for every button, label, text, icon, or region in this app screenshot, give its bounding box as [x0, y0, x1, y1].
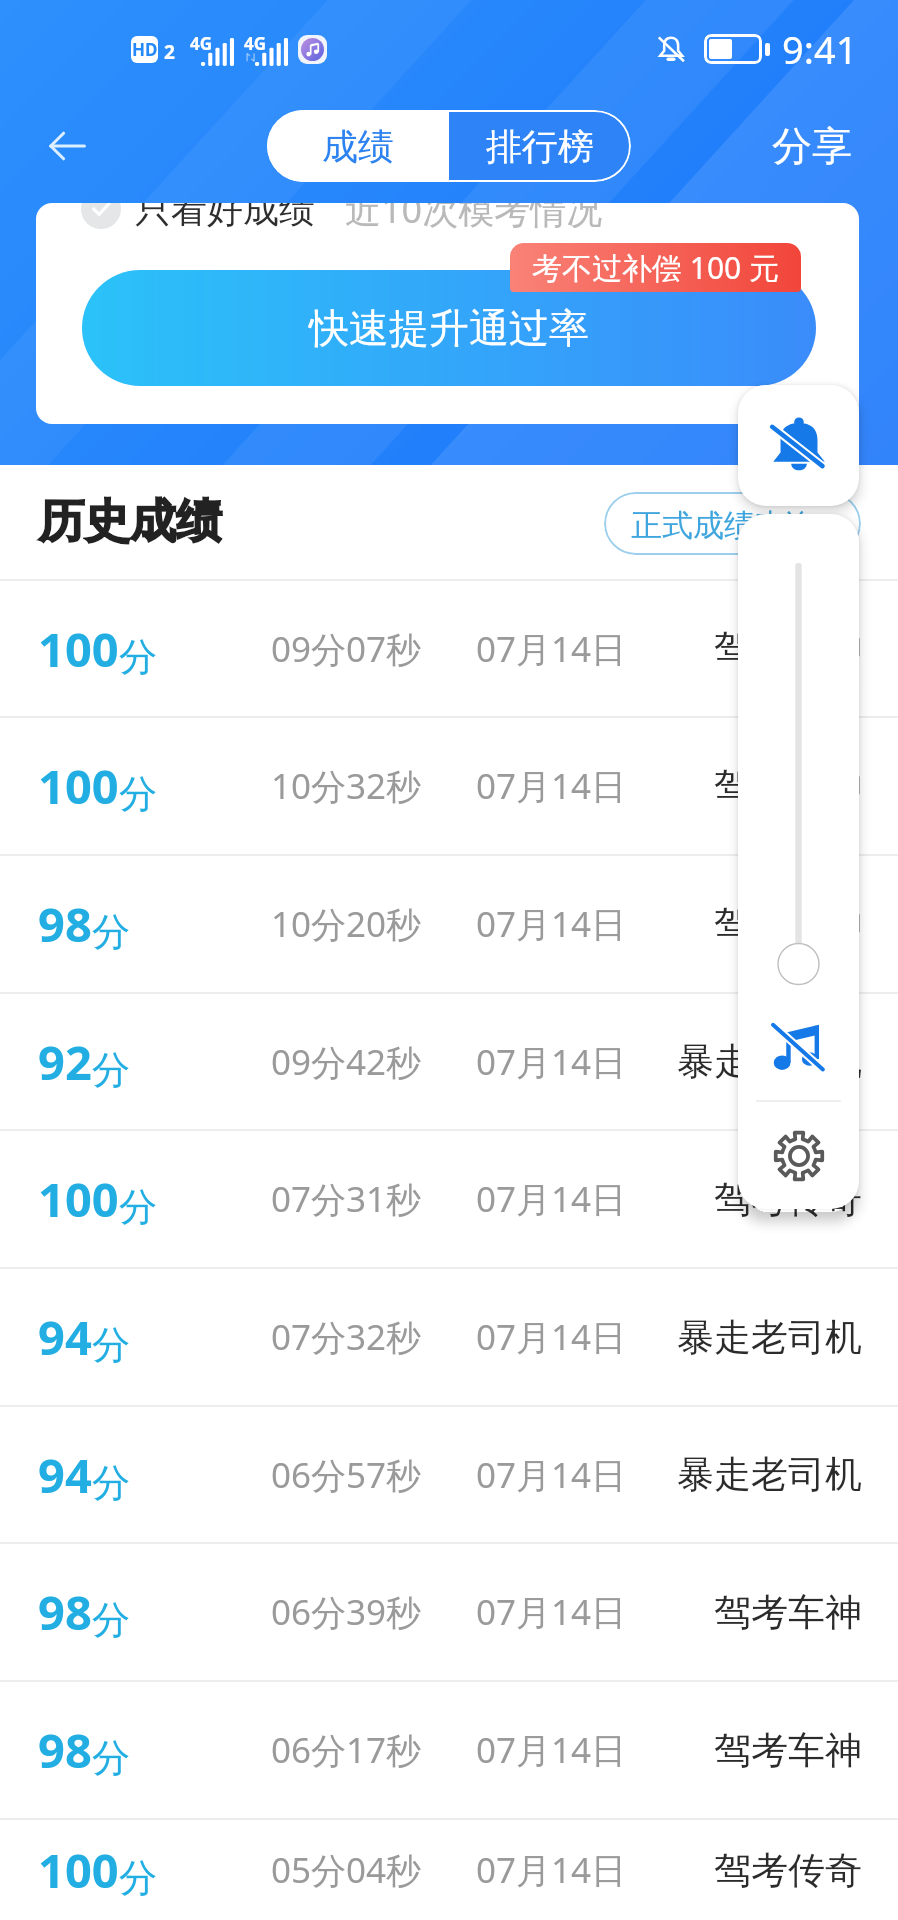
staticText: 分 — [119, 1854, 157, 1902]
staticText: 07月14日 — [476, 1038, 627, 1086]
staticText: 近10次模考情况 — [345, 203, 603, 234]
staticText: 4G — [190, 32, 213, 55]
button[interactable]: 94 — [0, 1407, 898, 1542]
staticText: 分 — [119, 633, 157, 681]
button[interactable]: 排行榜 — [449, 110, 631, 182]
staticText: 快速提升通过率 — [309, 303, 589, 353]
staticText: 07月14日 — [476, 1313, 627, 1361]
staticText: 分 — [92, 1046, 130, 1094]
staticText: 只看好成绩 — [135, 203, 315, 232]
staticText: 分 — [92, 1596, 130, 1644]
button[interactable]: 100 — [0, 1131, 898, 1267]
staticText: 驾考传奇 — [714, 1847, 862, 1894]
staticText: 考不过补偿 100 元 — [532, 247, 780, 288]
staticText: 07分32秒 — [271, 1313, 422, 1361]
staticText: 驾考车神 — [714, 1727, 862, 1774]
staticText: 07月14日 — [476, 1588, 627, 1636]
button[interactable]: 分享 — [772, 121, 852, 171]
staticText: 09分42秒 — [271, 1038, 422, 1086]
staticText: 100 — [38, 1167, 119, 1231]
staticText: 100 — [38, 1838, 119, 1902]
staticText: 分 — [92, 1734, 130, 1782]
staticText: 分享 — [772, 121, 852, 171]
staticText: 分 — [92, 1459, 130, 1507]
staticText: 06分17秒 — [271, 1726, 422, 1774]
staticText: 07月14日 — [476, 1846, 627, 1894]
staticText: 07月14日 — [476, 625, 627, 673]
button[interactable]: 98 — [0, 1682, 898, 1818]
staticText: 暴走老司机 — [677, 1038, 862, 1085]
button[interactable]: 正式成绩查询 › — [604, 492, 861, 555]
button[interactable]: 100 — [0, 581, 898, 716]
staticText: 正式成绩查询 › — [631, 503, 835, 545]
button[interactable]: Back — [30, 106, 110, 186]
staticText: 98 — [38, 892, 92, 956]
button[interactable]: 快速提升通过率 — [82, 270, 816, 386]
staticText: 100 — [38, 754, 119, 818]
staticText: 暴走老司机 — [677, 1314, 862, 1361]
staticText: 暴走老司机 — [677, 1451, 862, 1498]
staticText: 07分31秒 — [271, 1175, 422, 1223]
staticText: 驾考车神 — [714, 901, 862, 948]
staticText: 94 — [38, 1305, 92, 1369]
button[interactable]: 98 — [0, 856, 898, 992]
staticText: 09分07秒 — [271, 625, 422, 673]
button[interactable]: 94 — [0, 1269, 898, 1405]
button[interactable]: 成绩 — [267, 110, 449, 182]
staticText: 06分39秒 — [271, 1588, 422, 1636]
button[interactable]: 92 — [0, 994, 898, 1129]
staticText: 07月14日 — [476, 762, 627, 810]
staticText: HD — [132, 38, 158, 61]
staticText: 07月14日 — [476, 1451, 627, 1499]
button[interactable]: 98 — [0, 1544, 898, 1680]
staticText: 07月14日 — [476, 1726, 627, 1774]
staticText: 分 — [119, 770, 157, 818]
staticText: 排行榜 — [486, 124, 594, 169]
staticText: 98 — [38, 1580, 92, 1644]
staticText: 驾考车神 — [714, 1589, 862, 1636]
button[interactable]: 100 — [0, 1820, 898, 1920]
staticText: 分 — [92, 908, 130, 956]
staticText: 07月14日 — [476, 1175, 627, 1223]
staticText: 驾考车神 — [714, 763, 862, 810]
staticText: 历史成绩 — [38, 493, 222, 551]
button[interactable]: 100 — [0, 718, 898, 854]
staticText: 06分57秒 — [271, 1451, 422, 1499]
staticText: 4G — [244, 32, 267, 55]
staticText: 98 — [38, 1718, 92, 1782]
button[interactable]: Mute — [738, 993, 859, 1097]
staticText: 05分04秒 — [271, 1846, 422, 1894]
staticText: 10分20秒 — [271, 900, 422, 948]
staticText: 07月14日 — [476, 900, 627, 948]
staticText: 分 — [119, 1183, 157, 1231]
button[interactable]: Silent mode — [738, 385, 859, 506]
staticText: 92 — [38, 1030, 92, 1094]
staticText: 成绩 — [322, 124, 394, 169]
staticText: 94 — [38, 1443, 92, 1507]
staticText: 分 — [92, 1321, 130, 1369]
staticText: 2 — [164, 39, 175, 59]
staticText: 10分32秒 — [271, 762, 422, 810]
staticText: 9:41 — [782, 23, 858, 75]
staticText: 100 — [38, 617, 119, 681]
staticText: 驾考车神 — [714, 625, 862, 672]
staticText: 驾考传奇 — [714, 1176, 862, 1223]
button[interactable]: Settings — [738, 1102, 859, 1209]
